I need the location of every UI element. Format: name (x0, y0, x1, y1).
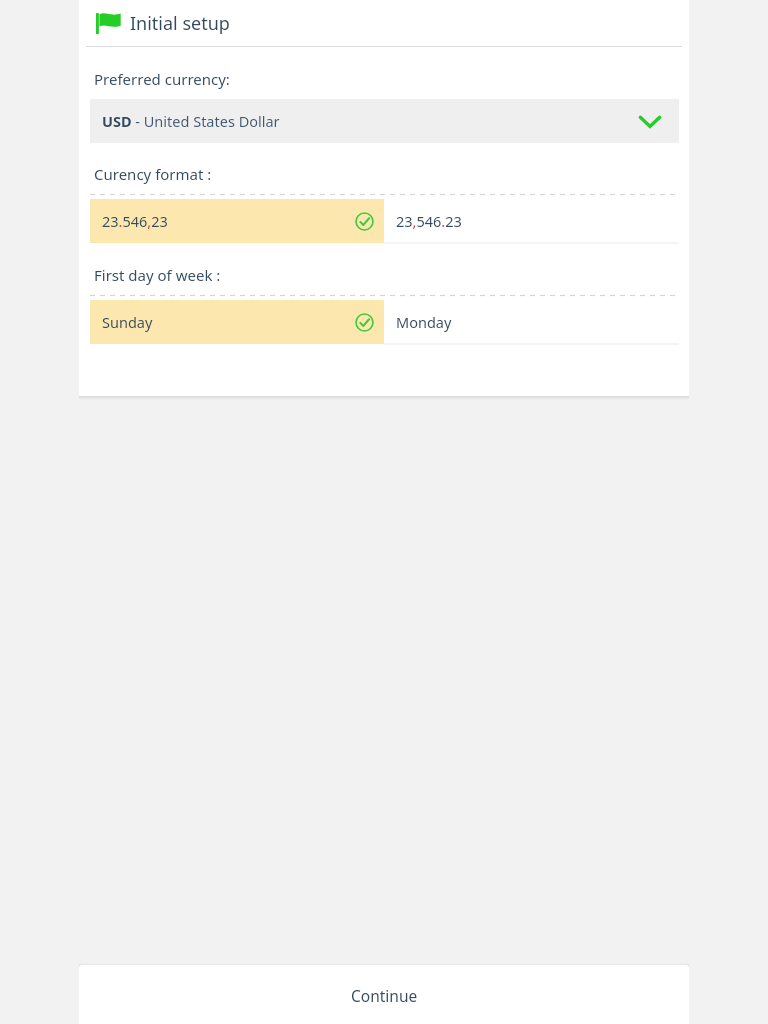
staticText: Initial setup (130, 11, 230, 36)
button[interactable]: USD - United States Dollar (90, 99, 679, 143)
staticText: Curency format : (94, 164, 212, 184)
staticText: First day of week : (94, 265, 221, 285)
button[interactable]: Sunday (90, 300, 384, 344)
button[interactable]: 23.546,23 (90, 199, 384, 243)
staticText: 23.546,23 (102, 211, 168, 231)
staticText: 23,546.23 (396, 211, 462, 231)
staticText: Continue (351, 985, 418, 1006)
other: Selected (355, 313, 374, 332)
staticText: Preferred currency: (94, 69, 230, 89)
staticText: USD - United States Dollar (102, 111, 280, 131)
staticText: Monday (396, 312, 452, 332)
button[interactable]: Continue (79, 965, 689, 1024)
other: Flag (96, 12, 122, 34)
other: Selected (355, 212, 374, 231)
staticText: Sunday (102, 312, 153, 332)
button[interactable]: Monday (384, 300, 679, 344)
button[interactable]: Expand currency list (637, 108, 663, 134)
button[interactable]: 23,546.23 (384, 199, 679, 243)
